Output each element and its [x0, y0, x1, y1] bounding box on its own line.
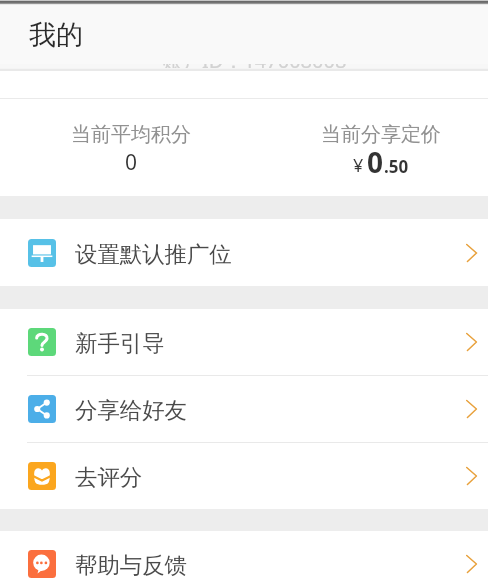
staticText: 0	[367, 143, 384, 181]
staticText: 当前分享定价	[321, 122, 441, 147]
button[interactable]: 分享给好友	[0, 376, 488, 442]
staticText: .50	[384, 155, 409, 178]
button[interactable]: 设置默认推广位	[0, 219, 488, 286]
staticText: 账户ID：147008008	[162, 64, 347, 68]
button[interactable]: 去评分	[0, 443, 488, 509]
other: Rate app	[466, 467, 484, 485]
other: Beginner guide	[466, 333, 484, 351]
staticText: 我的	[29, 18, 83, 52]
other: Share with friends	[466, 400, 484, 418]
staticText: 新手引导	[75, 329, 165, 357]
staticText: 0	[125, 148, 138, 177]
staticText: 帮助与反馈	[75, 551, 187, 579]
staticText: 去评分	[75, 463, 143, 491]
staticText: 设置默认推广位	[75, 240, 232, 268]
staticText: ¥	[353, 153, 364, 178]
button[interactable]: 新手引导	[0, 309, 488, 375]
staticText: 分享给好友	[75, 396, 187, 424]
other: Set default promotion slot	[466, 244, 484, 262]
staticText: 当前平均积分	[71, 122, 191, 147]
other: Help and feedback	[466, 555, 484, 573]
button[interactable]: 帮助与反馈	[0, 531, 488, 581]
